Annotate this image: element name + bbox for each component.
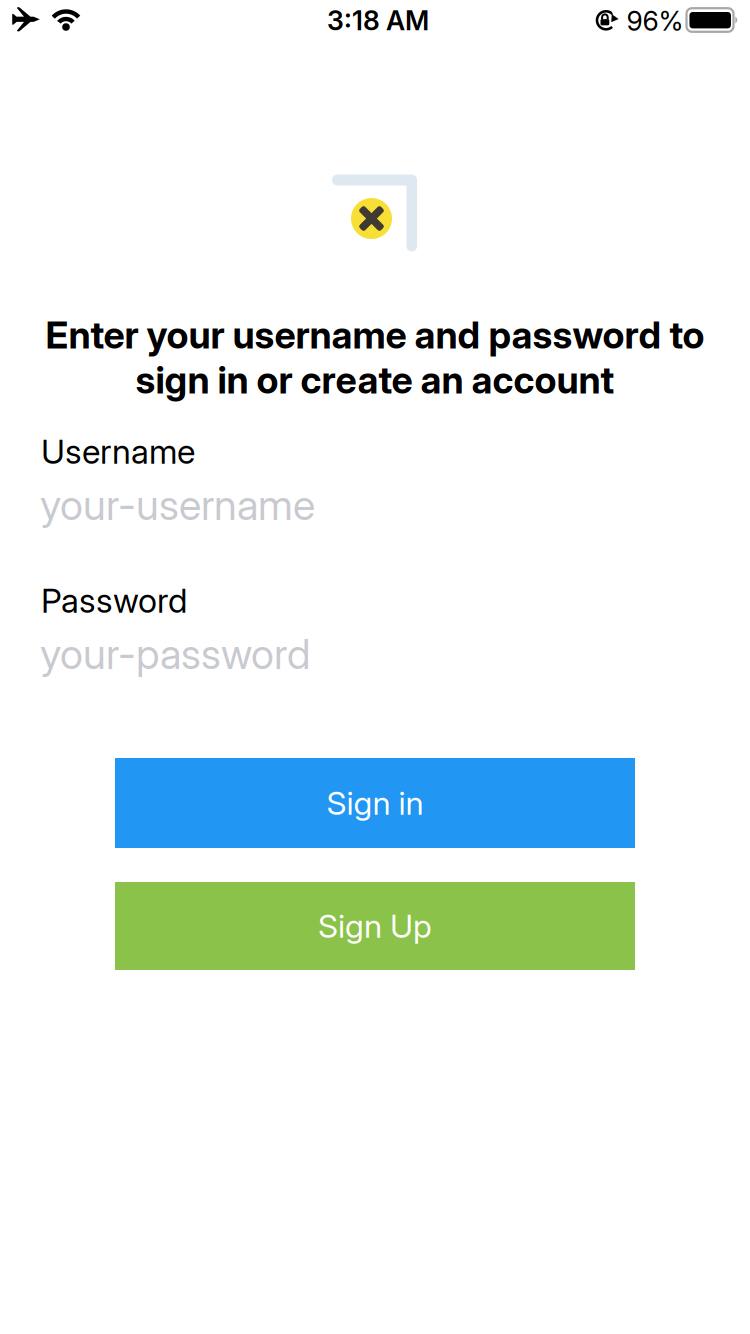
staticText: 3:18 AM [327,5,429,36]
secureTextField[interactable]: your-password [40,623,710,685]
staticText: Sign in [326,784,423,822]
staticText: Username [41,432,195,471]
staticText: Enter your username and password to [45,313,704,357]
staticText: sign in or create an account [135,358,614,402]
textField[interactable]: your-username [40,474,710,536]
staticText: Password [41,581,187,620]
staticText: your-password [40,630,310,678]
staticText: 96% [626,5,683,37]
button[interactable]: Sign Up [115,882,635,970]
staticText: your-username [40,481,315,529]
button[interactable]: Sign in [115,758,635,848]
staticText: Sign Up [318,907,432,945]
